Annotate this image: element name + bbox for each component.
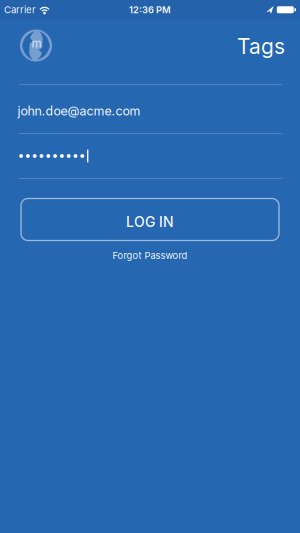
staticText: Tags — [237, 33, 285, 59]
staticText: LOG IN — [126, 213, 174, 230]
staticText: john.doe@acme.com — [17, 103, 140, 118]
button[interactable]: Forgot Password — [112, 250, 187, 261]
staticText: Carrier — [4, 4, 36, 15]
staticText: 12:36 PM — [129, 4, 171, 15]
button[interactable]: Password — [0, 134, 300, 178]
staticText: Forgot Password — [112, 250, 187, 261]
button[interactable]: Email — [0, 85, 300, 133]
staticText: m — [31, 37, 41, 50]
button[interactable]: LOG IN — [21, 198, 279, 240]
